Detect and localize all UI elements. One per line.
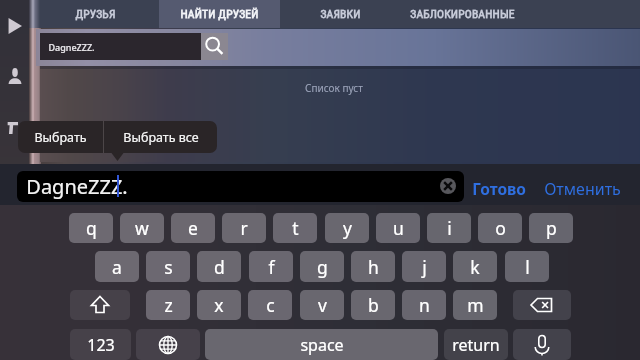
staticText: s: [164, 255, 173, 279]
button[interactable]: ЗАЯВКИ: [285, 0, 395, 28]
button[interactable]: g: [300, 251, 344, 282]
button[interactable]: Profile: [8, 68, 22, 84]
button[interactable]: w: [120, 213, 164, 243]
staticText: Список пуст: [305, 81, 363, 95]
button[interactable]: l: [505, 251, 549, 282]
button[interactable]: Weapons: [7, 122, 18, 134]
button[interactable]: v: [300, 290, 344, 320]
staticText: y: [343, 216, 352, 240]
staticText: Выбрать все: [123, 129, 199, 146]
staticText: u: [393, 216, 404, 240]
staticText: ЗАЯВКИ: [320, 7, 361, 21]
staticText: i: [447, 216, 452, 240]
staticText: space: [300, 334, 344, 356]
button[interactable]: Play: [8, 18, 22, 34]
staticText: ДРУЗЬЯ: [75, 7, 116, 21]
button[interactable]: a: [95, 251, 139, 282]
staticText: l: [525, 255, 530, 279]
button[interactable]: Backspace: [513, 290, 571, 320]
staticText: q: [86, 216, 97, 240]
button[interactable]: return: [444, 329, 508, 360]
button[interactable]: НАЙТИ ДРУЗЕЙ: [159, 0, 280, 28]
staticText: x: [214, 293, 224, 317]
button[interactable]: DagneZZZ.: [40, 33, 201, 60]
button[interactable]: Выбрать все: [104, 121, 217, 153]
staticText: Выбрать: [34, 129, 87, 146]
staticText: v: [318, 293, 327, 317]
staticText: z: [164, 293, 173, 317]
staticText: r: [240, 216, 248, 240]
button[interactable]: d: [197, 251, 241, 282]
button[interactable]: z: [146, 290, 190, 320]
button[interactable]: b: [351, 290, 395, 320]
staticText: НАЙТИ ДРУЗЕЙ: [180, 7, 259, 21]
staticText: c: [266, 293, 275, 317]
button[interactable]: x: [197, 290, 241, 320]
button[interactable]: u: [376, 213, 420, 243]
button[interactable]: q: [69, 213, 113, 243]
button[interactable]: space: [205, 329, 438, 360]
staticText: t: [292, 216, 299, 240]
staticText: p: [546, 216, 557, 240]
button[interactable]: Change keyboard: [136, 329, 200, 360]
button[interactable]: i: [427, 213, 471, 243]
staticText: h: [368, 255, 379, 279]
button[interactable]: o: [478, 213, 522, 243]
button[interactable]: f: [249, 251, 293, 282]
staticText: f: [268, 255, 275, 279]
staticText: o: [495, 216, 506, 240]
button[interactable]: y: [325, 213, 369, 243]
button[interactable]: [159, 0, 280, 28]
button[interactable]: ДРУЗЬЯ: [38, 0, 153, 28]
button[interactable]: Выбрать: [18, 121, 103, 153]
button[interactable]: Готово: [470, 176, 528, 201]
button[interactable]: Clear text: [440, 178, 456, 194]
staticText: return: [452, 334, 500, 356]
button[interactable]: m: [453, 290, 497, 320]
staticText: e: [188, 216, 198, 240]
button[interactable]: r: [222, 213, 266, 243]
button[interactable]: ЗАБЛОКИРОВАННЫЕ: [377, 0, 547, 28]
button[interactable]: Отменить: [542, 176, 623, 202]
staticText: ЗАБЛОКИРОВАННЫЕ: [410, 7, 515, 21]
button[interactable]: 123: [70, 329, 131, 360]
button[interactable]: DagneZZZ.: [17, 171, 464, 202]
staticText: n: [419, 293, 430, 317]
staticText: b: [368, 293, 379, 317]
staticText: w: [135, 216, 149, 240]
staticText: 123: [87, 334, 115, 356]
staticText: k: [470, 255, 480, 279]
button[interactable]: e: [171, 213, 215, 243]
button[interactable]: k: [453, 251, 497, 282]
button[interactable]: s: [146, 251, 190, 282]
staticText: j: [422, 255, 427, 279]
button[interactable]: c: [248, 290, 292, 320]
staticText: a: [112, 255, 122, 279]
button[interactable]: h: [351, 251, 395, 282]
staticText: m: [467, 293, 484, 317]
staticText: DagneZZZ.: [26, 173, 128, 200]
staticText: Отменить: [544, 178, 621, 200]
button[interactable]: p: [529, 213, 573, 243]
button[interactable]: Shift: [70, 290, 130, 320]
button[interactable]: Voice input: [513, 329, 571, 360]
button[interactable]: j: [402, 251, 446, 282]
button[interactable]: n: [402, 290, 446, 320]
staticText: g: [317, 255, 328, 279]
staticText: DagneZZZ.: [48, 41, 95, 53]
button[interactable]: t: [273, 213, 317, 243]
staticText: Готово: [472, 178, 526, 199]
staticText: d: [214, 255, 225, 279]
button[interactable]: Search: [201, 33, 228, 60]
